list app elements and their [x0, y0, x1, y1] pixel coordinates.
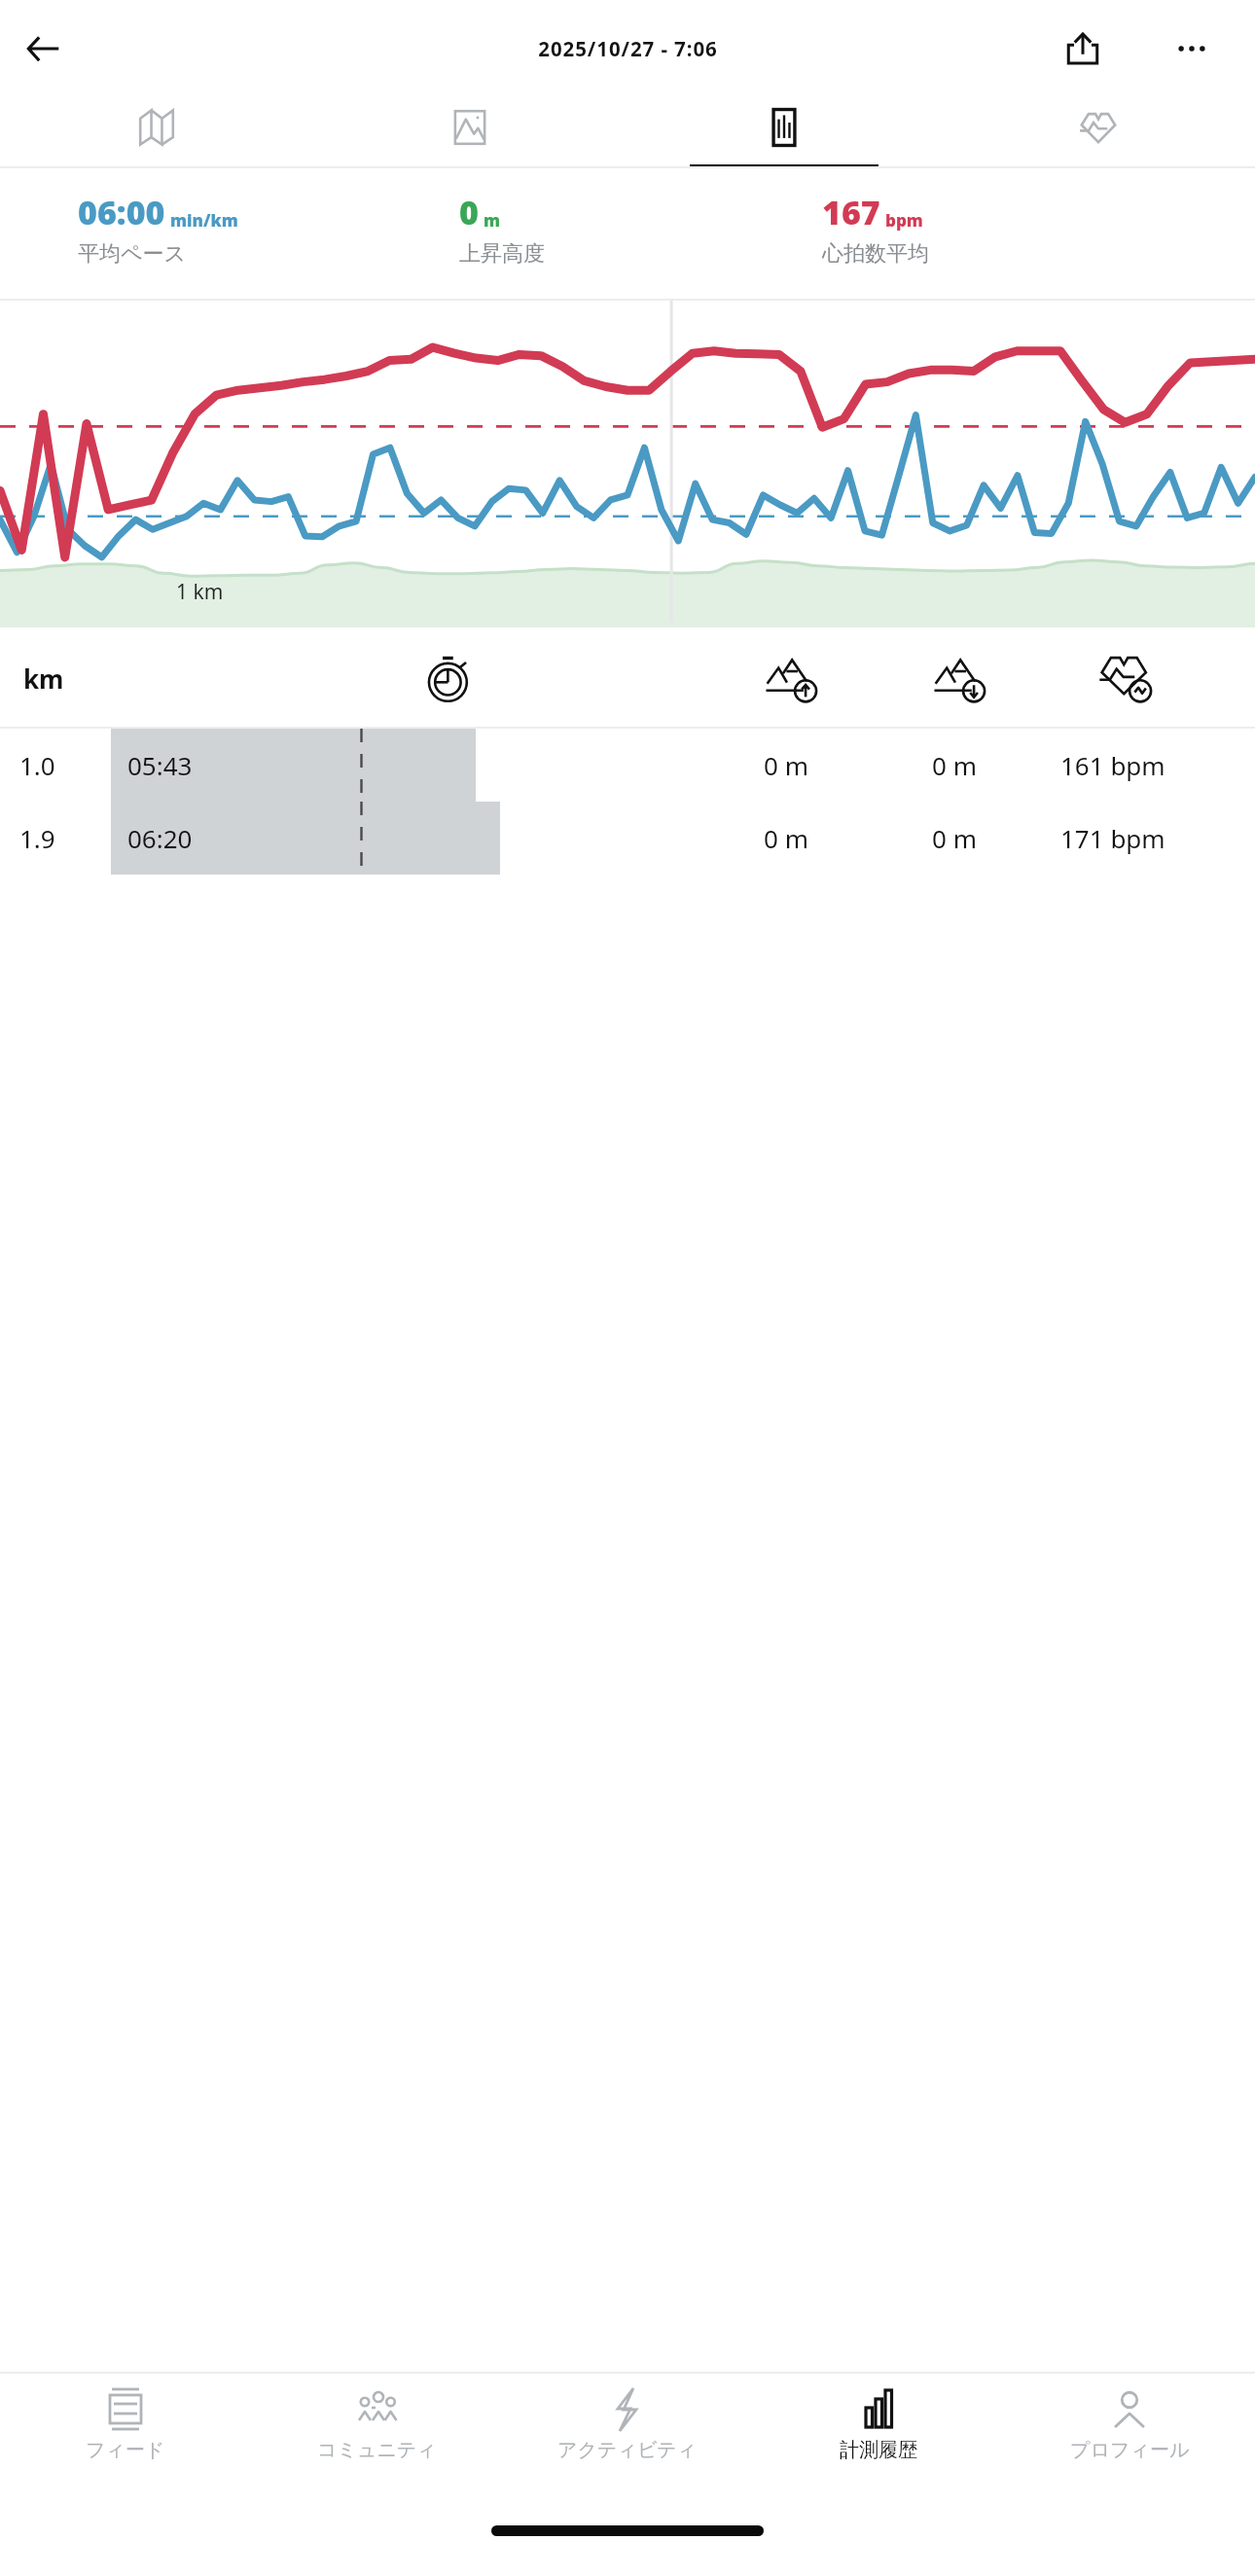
staticText: 平均ペース	[78, 240, 187, 268]
staticText: 06:20	[127, 821, 193, 855]
staticText: 05:43	[127, 748, 193, 782]
button[interactable]: 計測履歴	[753, 2374, 1004, 2498]
staticText: 2025/10/27 - 7:06	[538, 35, 718, 62]
button[interactable]: Share	[1055, 20, 1111, 77]
button[interactable]: Photos	[313, 97, 627, 168]
staticText: 0 m	[932, 748, 977, 782]
staticText: km	[23, 662, 64, 696]
staticText: 1.0	[19, 748, 55, 782]
staticText: 167	[822, 190, 880, 234]
button[interactable]: Map	[0, 97, 313, 168]
staticText: アクティビティ	[557, 2438, 698, 2462]
staticText: 0 m	[764, 748, 808, 782]
button[interactable]: アクティビティ	[502, 2374, 753, 2498]
staticText: 0 m	[932, 821, 977, 855]
button[interactable]: プロフィール	[1004, 2374, 1255, 2498]
button[interactable]: コミュニティ	[251, 2374, 502, 2498]
button[interactable]: フィード	[0, 2374, 251, 2498]
button[interactable]: Charts	[627, 97, 941, 168]
staticText: コミュニティ	[317, 2438, 437, 2462]
staticText: m	[484, 209, 500, 232]
button[interactable]: 1.9	[0, 802, 1255, 875]
staticText: 0	[459, 190, 479, 234]
staticText: 1 km	[176, 578, 224, 606]
staticText: 06:00	[78, 190, 165, 234]
button[interactable]: Back	[14, 18, 74, 79]
staticText: bpm	[885, 209, 923, 232]
staticText: 上昇高度	[459, 240, 545, 268]
staticText: 心拍数平均	[822, 240, 929, 268]
staticText: 計測履歴	[840, 2438, 917, 2462]
button[interactable]: Heart rate	[941, 97, 1255, 168]
button[interactable]: 1.0	[0, 729, 1255, 802]
staticText: プロフィール	[1070, 2438, 1190, 2462]
staticText: フィード	[86, 2438, 165, 2462]
button[interactable]: More options	[1164, 20, 1220, 77]
staticText: min/km	[170, 209, 238, 232]
staticText: 161 bpm	[1060, 748, 1165, 782]
staticText: 171 bpm	[1060, 821, 1165, 855]
staticText: 1.9	[19, 821, 55, 855]
staticText: 0 m	[764, 821, 808, 855]
